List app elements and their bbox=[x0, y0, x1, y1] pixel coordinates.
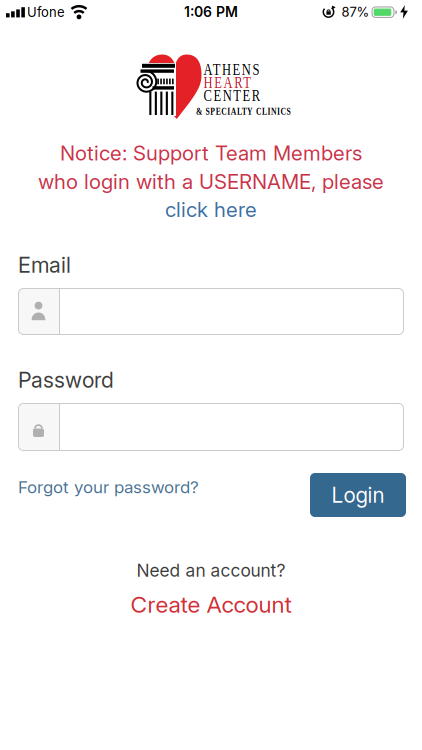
staticText: Notice: Support Team Members bbox=[60, 141, 362, 165]
staticText: Forgot your password? bbox=[18, 477, 199, 497]
staticText: ATHENS bbox=[203, 60, 277, 78]
button[interactable]: Login bbox=[310, 473, 406, 517]
staticText: who login with a USERNAME, please bbox=[38, 169, 384, 194]
staticText: 87% bbox=[341, 4, 369, 20]
button[interactable]: Create Account bbox=[130, 591, 291, 618]
button[interactable]: Forgot your password? bbox=[18, 477, 199, 497]
staticText: 1:06 PM bbox=[184, 3, 238, 20]
staticText: CENTER bbox=[203, 86, 278, 105]
staticText: & SPECIALTY CLINICS bbox=[196, 105, 331, 117]
staticText: Login bbox=[331, 482, 384, 508]
staticText: Create Account bbox=[130, 591, 291, 618]
staticText: Ufone bbox=[27, 4, 65, 20]
staticText: HEART bbox=[203, 73, 266, 92]
staticText: Need an account? bbox=[136, 560, 285, 581]
button[interactable]: Email bbox=[18, 288, 404, 335]
staticText: click here bbox=[165, 197, 257, 222]
button[interactable]: Password bbox=[18, 403, 404, 451]
staticText: Email bbox=[18, 252, 71, 278]
button[interactable]: click here bbox=[165, 197, 257, 222]
staticText: Password bbox=[18, 367, 114, 393]
